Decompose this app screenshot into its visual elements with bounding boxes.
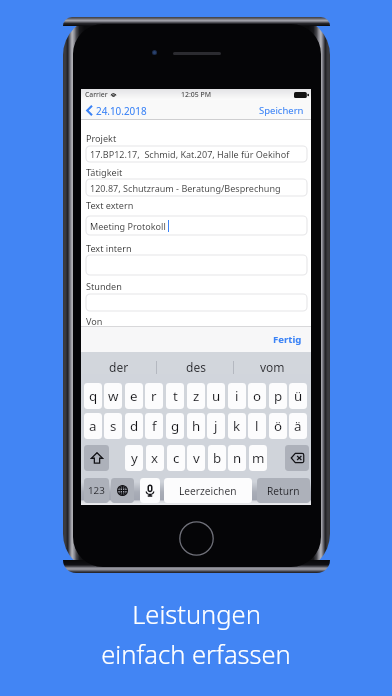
staticText: vom: [260, 359, 285, 375]
staticText: Leerzeichen: [179, 484, 237, 498]
button[interactable]: e: [125, 383, 143, 409]
staticText: p: [274, 387, 283, 405]
button[interactable]: u: [207, 383, 225, 409]
button[interactable]: d: [125, 413, 143, 439]
staticText: v: [193, 449, 200, 467]
staticText: w: [108, 387, 119, 405]
button[interactable]: Meeting Protokoll: [86, 216, 307, 235]
staticText: Projekt: [86, 132, 117, 144]
button[interactable]: m: [249, 445, 267, 471]
button[interactable]: Dictate: [140, 478, 160, 503]
staticText: o: [253, 387, 262, 405]
button[interactable]: ü: [289, 383, 307, 409]
button[interactable]: c: [167, 445, 185, 471]
button[interactable]: k: [228, 413, 246, 439]
button[interactable]: x: [146, 445, 164, 471]
button[interactable]: n: [228, 445, 246, 471]
staticText: h: [192, 417, 201, 435]
button[interactable]: ö: [269, 413, 287, 439]
staticText: 120.87, Schutzraum - Beratung/Besprechun…: [90, 182, 281, 194]
staticText: Stunden: [86, 280, 122, 292]
button[interactable]: r: [145, 383, 163, 409]
button[interactable]: q: [84, 383, 102, 409]
staticText: q: [89, 387, 98, 405]
staticText: Text extern: [86, 199, 134, 211]
staticText: k: [233, 417, 241, 435]
staticText: s: [110, 417, 117, 435]
staticText: Return: [267, 484, 300, 498]
staticText: m: [252, 449, 265, 467]
staticText: b: [213, 449, 222, 467]
button[interactable]: der: [81, 352, 157, 382]
button[interactable]: g: [166, 413, 184, 439]
button[interactable]: b: [208, 445, 226, 471]
button[interactable]: des: [157, 352, 234, 382]
staticText: y: [131, 449, 138, 467]
button[interactable]: v: [187, 445, 205, 471]
button[interactable]: [86, 294, 307, 311]
staticText: Text intern: [86, 242, 132, 254]
button[interactable]: s: [104, 413, 122, 439]
button[interactable]: Return: [257, 478, 310, 503]
staticText: ü: [294, 387, 303, 405]
staticText: r: [151, 387, 157, 405]
staticText: t: [173, 387, 178, 405]
staticText: Leistungen: [132, 597, 261, 632]
staticText: Speichern: [259, 104, 304, 117]
staticText: d: [130, 417, 139, 435]
button[interactable]: p: [269, 383, 287, 409]
staticText: 17.BP12.17, Schmid, Kat.207, Halle für O…: [90, 148, 290, 160]
button[interactable]: f: [145, 413, 163, 439]
staticText: des: [186, 359, 206, 375]
button[interactable]: Leerzeichen: [164, 478, 252, 503]
button[interactable]: 24.10.2018: [86, 100, 147, 120]
button[interactable]: a: [84, 413, 102, 439]
staticText: i: [235, 387, 239, 405]
staticText: Meeting Protokoll: [90, 220, 166, 232]
staticText: g: [171, 417, 180, 435]
button[interactable]: o: [248, 383, 266, 409]
button[interactable]: z: [187, 383, 205, 409]
staticText: j: [214, 417, 218, 435]
button[interactable]: ä: [289, 413, 307, 439]
staticText: n: [233, 449, 242, 467]
button[interactable]: h: [187, 413, 205, 439]
staticText: 123: [88, 484, 105, 497]
staticText: u: [212, 387, 221, 405]
button[interactable]: Fertig: [264, 326, 311, 352]
staticText: x: [151, 449, 159, 467]
staticText: f: [152, 417, 157, 435]
button[interactable]: y: [125, 445, 143, 471]
button[interactable]: i: [228, 383, 246, 409]
staticText: Fertig: [273, 333, 302, 346]
button[interactable]: 120.87, Schutzraum - Beratung/Besprechun…: [86, 179, 307, 196]
staticText: 24.10.2018: [96, 104, 147, 117]
button[interactable]: 123: [84, 478, 109, 503]
button[interactable]: vom: [234, 352, 311, 382]
button[interactable]: Switch keyboard: [111, 478, 134, 503]
staticText: Tätigkeit: [86, 166, 123, 178]
staticText: l: [255, 417, 259, 435]
button[interactable]: Backspace: [285, 445, 309, 471]
staticText: einfach erfassen: [101, 637, 291, 672]
button[interactable]: Speichern: [252, 100, 311, 120]
staticText: c: [173, 449, 180, 467]
staticText: Von: [86, 315, 103, 327]
button[interactable]: l: [248, 413, 266, 439]
staticText: a: [89, 417, 97, 435]
button[interactable]: j: [207, 413, 225, 439]
button[interactable]: t: [166, 383, 184, 409]
staticText: ä: [294, 417, 302, 435]
button[interactable]: w: [104, 383, 122, 409]
button[interactable]: [86, 255, 307, 275]
staticText: ö: [274, 417, 283, 435]
button[interactable]: Shift: [84, 445, 109, 471]
staticText: z: [193, 387, 200, 405]
button[interactable]: 17.BP12.17, Schmid, Kat.207, Halle für O…: [86, 146, 307, 162]
staticText: e: [130, 387, 138, 405]
staticText: Carrier: [85, 90, 108, 99]
staticText: 12:05 PM: [181, 90, 211, 99]
staticText: der: [109, 359, 129, 375]
